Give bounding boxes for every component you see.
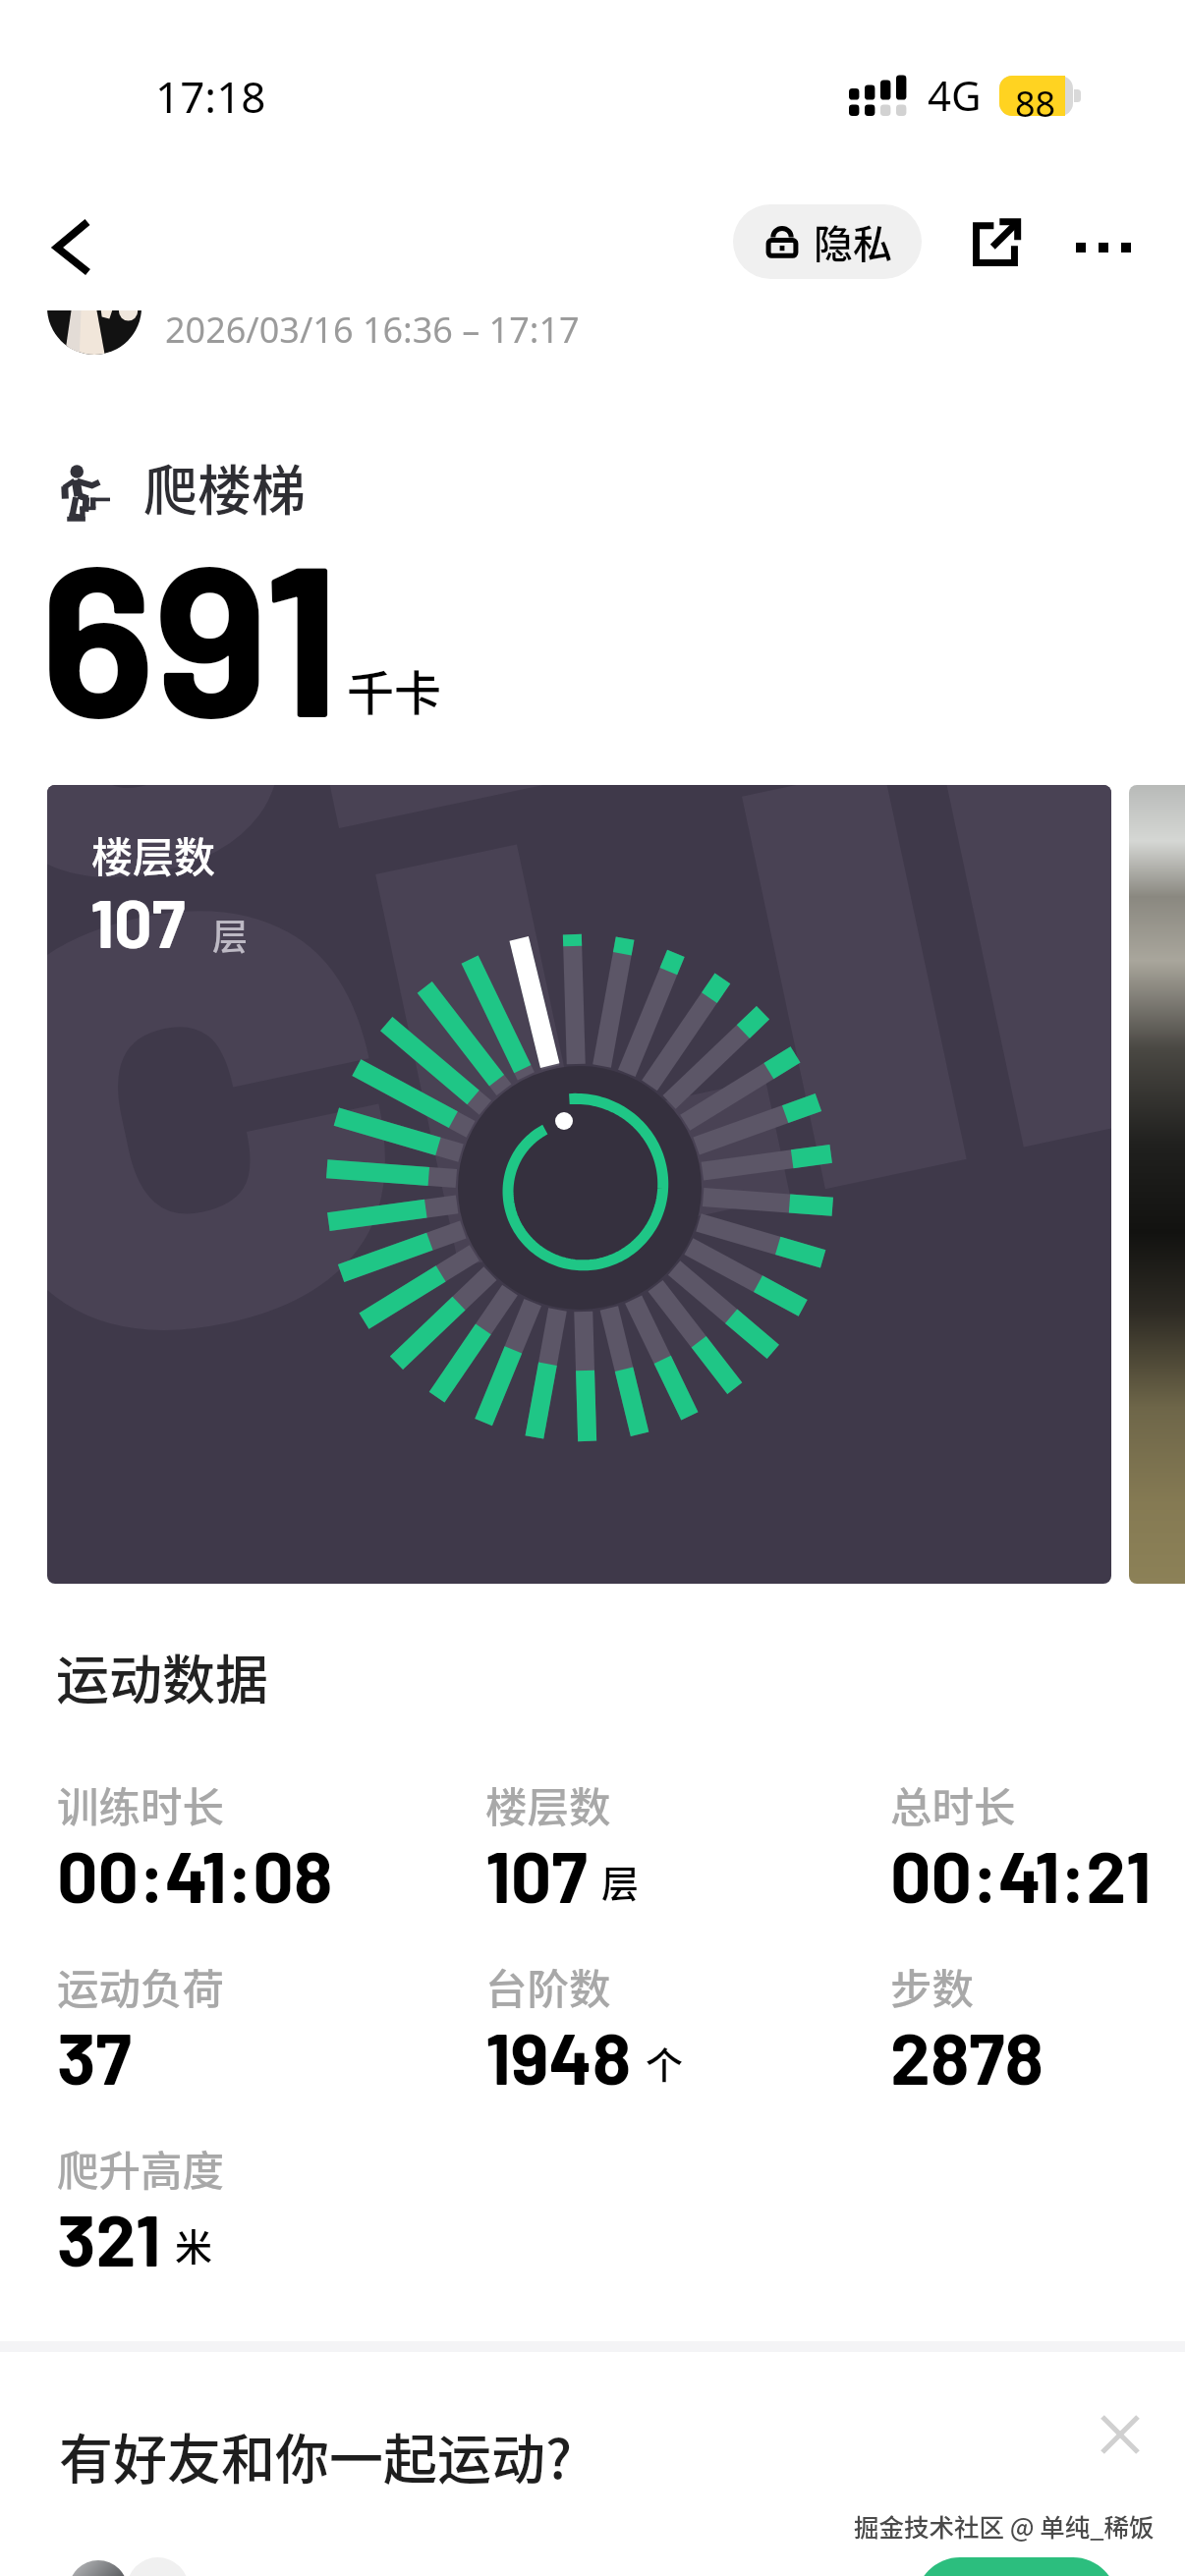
staticText: 楼层数 bbox=[91, 824, 216, 884]
staticText: 2026/03/16 16:36 – 17:17 bbox=[165, 306, 580, 354]
staticText: 691 bbox=[40, 504, 340, 759]
staticText: 88 bbox=[1015, 80, 1056, 128]
staticText: 楼层数 bbox=[485, 1774, 611, 1835]
staticText: 37 bbox=[57, 2013, 132, 2100]
staticText: 321 bbox=[57, 2195, 161, 2281]
staticText: 4G bbox=[928, 67, 982, 123]
staticText: 步数 bbox=[890, 1956, 975, 2017]
staticText: 00:41:08 bbox=[57, 1831, 333, 1918]
staticText: 107 bbox=[485, 1831, 588, 1918]
button[interactable]: 楼层数 bbox=[47, 785, 1111, 1584]
staticText: 17:18 bbox=[155, 67, 266, 126]
staticText: 层 bbox=[601, 1854, 640, 1908]
button[interactable] bbox=[1129, 785, 1185, 1584]
staticText: 层 bbox=[212, 909, 249, 960]
staticText: 千卡 bbox=[347, 655, 442, 724]
button[interactable]: Close bbox=[1081, 2395, 1159, 2474]
staticText: 00:41:21 bbox=[890, 1831, 1152, 1918]
staticText: 总时长 bbox=[890, 1774, 1016, 1835]
staticText: 爬楼梯 bbox=[143, 447, 307, 526]
staticText: 运动负荷 bbox=[57, 1956, 225, 2017]
staticText: 隐私 bbox=[814, 213, 892, 270]
staticText: 个 bbox=[646, 2036, 684, 2090]
button[interactable]: Share bbox=[950, 198, 1041, 289]
button[interactable]: More options bbox=[1067, 202, 1157, 293]
staticText: 爬升高度 bbox=[57, 2138, 225, 2199]
button[interactable]: 隐私 bbox=[733, 204, 922, 279]
staticText: 107 bbox=[90, 881, 186, 962]
button[interactable]: Invite friends bbox=[916, 2557, 1117, 2576]
staticText: 训练时长 bbox=[57, 1774, 225, 1835]
staticText: 运动数据 bbox=[56, 1638, 268, 1714]
staticText: 有好友和你一起运动? bbox=[59, 2416, 573, 2494]
button[interactable]: Back bbox=[12, 202, 102, 293]
staticText: 米 bbox=[175, 2217, 213, 2271]
staticText: 台阶数 bbox=[485, 1956, 611, 2017]
staticText: 1948 bbox=[485, 2013, 632, 2100]
staticText: 掘金技术社区 @ 单纯_稀饭 bbox=[854, 2507, 1155, 2544]
staticText: 2878 bbox=[890, 2013, 1044, 2100]
